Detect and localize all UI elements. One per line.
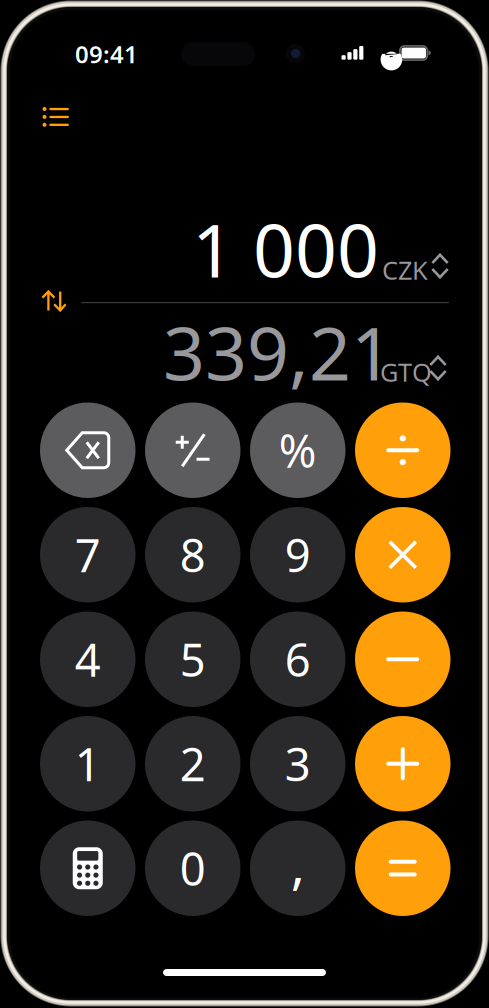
staticText: 0 [180, 838, 206, 898]
button[interactable]: Plus [355, 716, 450, 811]
button[interactable]: Target currency GTQ [380, 354, 446, 388]
staticText: CZK [382, 253, 428, 287]
button[interactable]: Swap currencies [32, 279, 76, 323]
button[interactable]: 9 [250, 507, 345, 602]
button[interactable]: Plus minus [145, 402, 240, 498]
button[interactable]: Delete [40, 402, 135, 498]
staticText: 1 000 [192, 200, 379, 298]
staticText: 2 [180, 734, 206, 794]
staticText: 8 [180, 525, 206, 585]
button[interactable]: Minus [355, 611, 450, 707]
button[interactable]: 7 [40, 507, 135, 602]
button[interactable]: 4 [40, 611, 135, 707]
button[interactable]: Equals [355, 820, 450, 916]
button[interactable]: Divide [355, 402, 450, 498]
button[interactable]: 0 [145, 820, 240, 916]
staticText: 3 [285, 734, 311, 794]
button[interactable]: Percent [250, 402, 345, 498]
staticText: 9 [285, 525, 311, 585]
staticText: 1 [75, 734, 101, 794]
button[interactable]: Currency list [30, 93, 82, 141]
staticText: % [279, 420, 317, 480]
staticText: 339,21 [163, 303, 393, 401]
staticText: 6 [285, 629, 311, 689]
button[interactable]: 3 [250, 716, 345, 811]
button[interactable]: 1 [40, 716, 135, 811]
staticText: 7 [75, 525, 101, 585]
button[interactable]: Multiply [355, 507, 450, 602]
button[interactable]: 6 [250, 611, 345, 707]
staticText: 09:41 [75, 38, 138, 70]
button[interactable]: , [250, 820, 345, 916]
staticText: 5 [180, 629, 206, 689]
staticText: , [291, 828, 305, 899]
staticText: 4 [75, 629, 101, 689]
button[interactable]: 2 [145, 716, 240, 811]
button[interactable]: Calculator [40, 820, 135, 916]
button[interactable]: Source currency CZK [382, 252, 448, 286]
button[interactable]: 8 [145, 507, 240, 602]
staticText: GTQ [380, 355, 432, 389]
button[interactable]: 5 [145, 611, 240, 707]
